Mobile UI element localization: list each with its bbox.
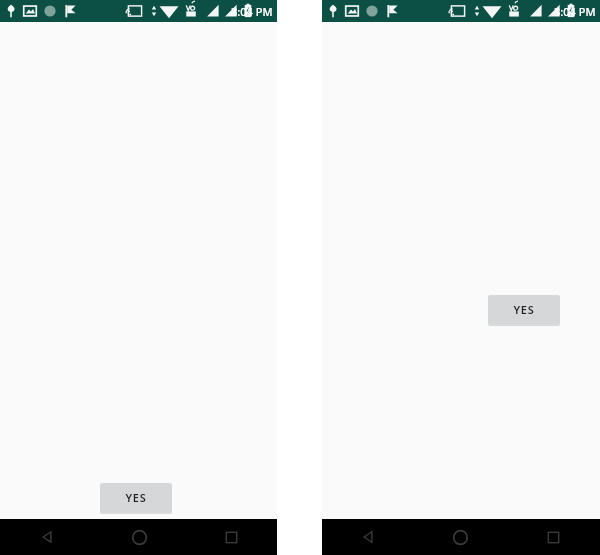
button[interactable]: YES (488, 295, 560, 324)
button[interactable]: Back (0, 519, 93, 555)
button[interactable]: Home (414, 519, 507, 555)
staticText: YES (513, 302, 535, 317)
button[interactable]: Back (322, 519, 414, 555)
button[interactable]: YES (100, 483, 172, 512)
button[interactable]: Recent apps (507, 519, 600, 555)
button[interactable]: Home (93, 519, 185, 555)
button[interactable]: Recent apps (185, 519, 277, 555)
staticText: 3:04 PM (231, 4, 273, 19)
staticText: 3:04 PM (554, 4, 596, 19)
staticText: YES (125, 490, 147, 505)
